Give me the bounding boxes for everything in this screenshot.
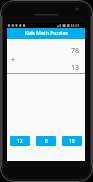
staticText: Kids Math Puzzles (25, 30, 68, 37)
button[interactable]: Kids Math Puzzles (7, 28, 85, 39)
staticText: 10 (69, 138, 75, 145)
button[interactable]: 12 (10, 136, 30, 146)
button[interactable]: 6 (36, 136, 56, 146)
staticText: 12 (17, 138, 23, 145)
staticText: 13 (71, 63, 80, 73)
button[interactable]: 10 (62, 136, 82, 146)
staticText: 78 (71, 46, 80, 56)
staticText: 6 (45, 138, 48, 145)
staticText: + (11, 55, 16, 65)
